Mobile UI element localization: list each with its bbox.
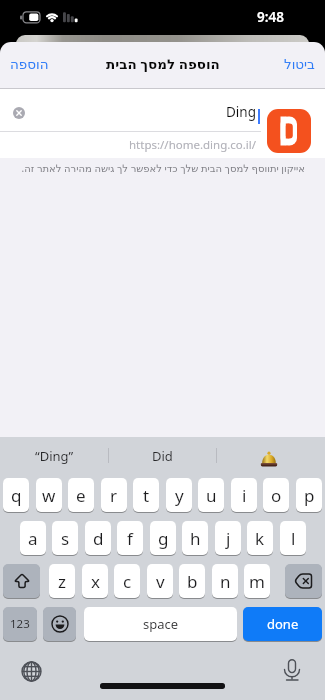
button[interactable]: w [36, 478, 62, 512]
staticText: h [190, 527, 201, 550]
staticText: j [226, 527, 231, 550]
staticText: l [291, 527, 296, 550]
staticText: x [91, 570, 100, 593]
button[interactable]: h [182, 521, 208, 555]
staticText: הוספה [10, 56, 49, 72]
staticText: https://home.ding.co.il/ [129, 137, 257, 153]
button[interactable]: x [82, 564, 108, 598]
staticText: f [127, 527, 133, 550]
staticText: q [11, 484, 22, 507]
button[interactable]: הוספה [4, 50, 55, 78]
button[interactable]: e [68, 478, 94, 512]
staticText: y [175, 484, 184, 507]
button[interactable]: d [85, 521, 111, 555]
staticText: g [158, 527, 169, 550]
button[interactable] [285, 564, 322, 598]
staticText: “Ding” [35, 447, 74, 465]
staticText: ביטול [284, 56, 315, 72]
staticText: r [110, 484, 118, 507]
button[interactable]: i [231, 478, 257, 512]
button[interactable]: ביטול [278, 50, 321, 78]
button[interactable] [43, 607, 76, 641]
staticText: Ding [226, 103, 256, 121]
button[interactable]: m [244, 564, 270, 598]
staticText: אייקון יתווסף למסך הבית שלך כדי לאפשר לך… [21, 161, 305, 175]
staticText: 123 [10, 616, 30, 632]
button[interactable]: done [243, 607, 322, 641]
staticText: m [249, 570, 265, 593]
button[interactable] [16, 656, 46, 686]
staticText: k [255, 527, 265, 550]
staticText: c [123, 570, 132, 593]
staticText: s [61, 527, 70, 550]
staticText: space [143, 615, 179, 633]
button[interactable]: t [133, 478, 159, 512]
button[interactable]: r [101, 478, 127, 512]
staticText: Did [152, 447, 173, 465]
button[interactable]: s [52, 521, 78, 555]
button[interactable]: l [280, 521, 306, 555]
staticText: done [267, 615, 299, 633]
button[interactable]: q [3, 478, 29, 512]
button[interactable]: p [296, 478, 322, 512]
button[interactable]: a [20, 521, 46, 555]
button[interactable]: v [147, 564, 173, 598]
staticText: t [143, 484, 150, 507]
staticText: z [58, 570, 66, 593]
button[interactable]: 123 [3, 607, 37, 641]
staticText: v [156, 570, 165, 593]
button[interactable] [3, 564, 40, 598]
button[interactable]: y [166, 478, 192, 512]
staticText: 9:48 [257, 8, 284, 26]
button[interactable]: k [247, 521, 273, 555]
button[interactable]: c [114, 564, 140, 598]
staticText: w [42, 484, 56, 507]
button[interactable]: n [212, 564, 238, 598]
staticText: הוספה למסך הבית [106, 55, 220, 73]
button[interactable]: Did [108, 441, 216, 471]
staticText: a [28, 527, 38, 550]
staticText: e [76, 484, 86, 507]
staticText: d [93, 527, 104, 550]
button[interactable]: f [117, 521, 143, 555]
button[interactable] [216, 441, 325, 471]
button[interactable] [267, 109, 311, 153]
button[interactable]: g [150, 521, 176, 555]
button[interactable]: “Ding” [0, 441, 108, 471]
staticText: o [271, 484, 282, 507]
button[interactable]: b [179, 564, 205, 598]
staticText: u [206, 484, 217, 507]
button[interactable] [278, 654, 306, 684]
staticText: i [242, 484, 247, 507]
button[interactable]: o [263, 478, 289, 512]
staticText: p [304, 484, 315, 507]
button[interactable]: space [84, 607, 237, 641]
button[interactable]: u [198, 478, 224, 512]
button[interactable]: j [215, 521, 241, 555]
staticText: b [187, 570, 198, 593]
staticText: n [220, 570, 231, 593]
button[interactable]: z [49, 564, 75, 598]
